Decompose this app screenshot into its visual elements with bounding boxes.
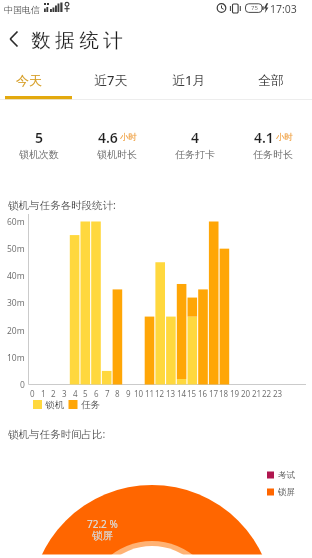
staticText: 60m (7, 216, 25, 228)
staticText: 72.2 % (87, 517, 118, 530)
staticText: 今天 (16, 72, 42, 88)
staticText: 19 (230, 388, 240, 399)
staticText: 12 (155, 388, 165, 399)
staticText: 小时 (276, 132, 293, 143)
button[interactable]: 近1月 (172, 66, 224, 94)
staticText: 17:03 (270, 2, 297, 15)
button[interactable]: 全部 (258, 66, 310, 94)
staticText: 任务 (81, 399, 100, 411)
button[interactable]: 今天 (16, 66, 68, 94)
staticText: 锁机次数 (19, 148, 59, 161)
staticText: 锁机 (45, 399, 64, 411)
staticText: 小时 (120, 132, 137, 143)
staticText: 7 (105, 388, 110, 399)
staticText: 11 (145, 388, 155, 399)
staticText: 近1月 (172, 71, 206, 89)
staticText: 21 (252, 388, 262, 399)
button[interactable]: 近7天 (94, 66, 146, 94)
staticText: 任务时长 (253, 148, 293, 161)
staticText: 中国电信 (4, 4, 40, 15)
staticText: 锁屏 (92, 529, 113, 542)
staticText: 4.6 (98, 128, 118, 147)
staticText: 75 (251, 4, 258, 12)
staticText: 5 (35, 128, 44, 147)
staticText: 40m (7, 270, 25, 282)
staticText: 锁机与任务时间占比: (8, 427, 106, 441)
staticText: 6 (94, 388, 99, 399)
staticText: 全部 (258, 72, 284, 88)
staticText: 50m (7, 243, 25, 255)
staticText: 1 (41, 388, 46, 399)
staticText: 10m (7, 352, 25, 364)
staticText: 9 (126, 388, 131, 399)
staticText: 数据统计 (29, 28, 125, 50)
staticText: 4 (73, 388, 78, 399)
staticText: 3 (62, 388, 67, 399)
staticText: 2 (51, 388, 56, 399)
staticText: 15 (187, 388, 197, 399)
staticText: 13 (166, 388, 176, 399)
button[interactable] (0, 24, 30, 54)
staticText: 4 (191, 128, 200, 147)
staticText: 0 (20, 379, 25, 391)
staticText: 20m (7, 325, 25, 337)
staticText: 锁机时长 (97, 148, 137, 161)
staticText: 锁屏 (278, 487, 295, 498)
staticText: 18 (219, 388, 229, 399)
staticText: 锁机与任务各时段统计: (8, 198, 116, 212)
staticText: 23 (273, 388, 283, 399)
staticText: 22 (262, 388, 272, 399)
staticText: 10 (134, 388, 144, 399)
staticText: 17 (209, 388, 219, 399)
staticText: 任务打卡 (175, 148, 215, 161)
staticText: 4.1 (254, 128, 274, 147)
staticText: 14 (177, 388, 187, 399)
staticText: 5 (83, 388, 88, 399)
staticText: 30m (7, 297, 25, 309)
staticText: 0 (30, 388, 35, 399)
staticText: 考试 (278, 470, 295, 481)
staticText: 近7天 (94, 71, 128, 89)
staticText: 16 (198, 388, 208, 399)
staticText: 20 (241, 388, 251, 399)
staticText: 8 (115, 388, 120, 399)
